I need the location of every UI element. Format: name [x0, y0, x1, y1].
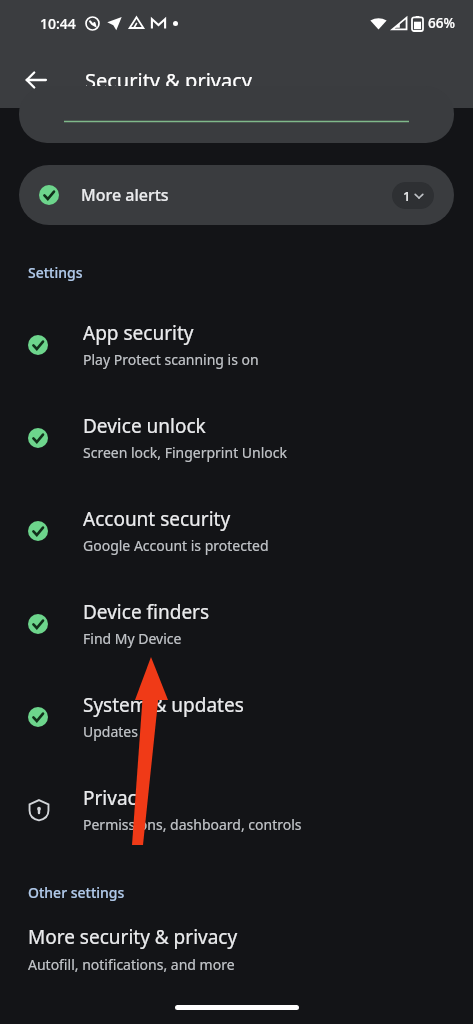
button[interactable]: Device unlock — [0, 391, 473, 484]
staticText: Device finders — [83, 599, 210, 625]
staticText: Google Account is protected — [83, 536, 269, 555]
staticText: App security — [83, 320, 194, 346]
button[interactable]: Privacy — [0, 763, 473, 856]
staticText: Security & privacy — [85, 67, 252, 94]
staticText: Account security — [83, 506, 231, 532]
staticText: Screen lock, Fingerprint Unlock — [83, 443, 287, 462]
staticText: Other settings — [28, 883, 125, 902]
button[interactable] — [19, 86, 454, 143]
staticText: Device unlock — [83, 413, 206, 439]
button[interactable]: More security & privacy — [0, 920, 473, 982]
button[interactable]: Back — [14, 58, 58, 102]
button[interactable]: Device finders — [0, 577, 473, 670]
staticText: Settings — [28, 263, 83, 282]
staticText: Updates — [83, 722, 138, 741]
button[interactable]: App security — [0, 298, 473, 391]
staticText: Permissions, dashboard, controls — [83, 815, 302, 834]
staticText: 1 — [403, 187, 411, 205]
staticText: More alerts — [81, 184, 169, 206]
staticText: More security & privacy — [28, 924, 238, 950]
staticText: Privacy — [83, 785, 147, 811]
staticText: Play Protect scanning is on — [83, 350, 259, 369]
staticText: System & updates — [83, 692, 244, 718]
button[interactable]: Expand more alerts — [392, 182, 434, 209]
button[interactable]: Account security — [0, 484, 473, 577]
staticText: Find My Device — [83, 629, 182, 648]
button[interactable]: More alerts — [19, 165, 454, 225]
button[interactable]: System & updates — [0, 670, 473, 763]
staticText: Autofill, notifications, and more — [28, 955, 235, 974]
staticText: 66% — [428, 14, 455, 32]
staticText: 10:44 — [40, 14, 76, 33]
